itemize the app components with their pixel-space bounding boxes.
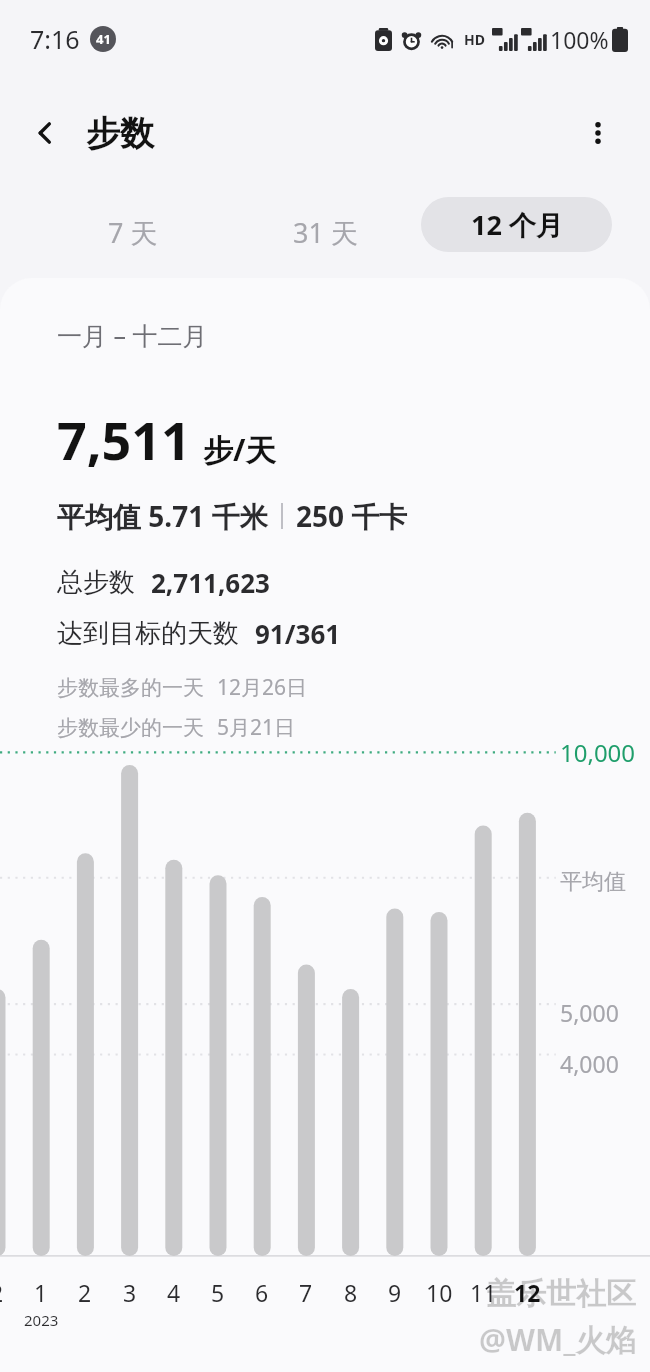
button[interactable]: 31 天: [250, 204, 400, 260]
staticText: 步数最多的一天: [57, 675, 204, 701]
staticText: 91/361: [255, 616, 341, 651]
staticText: 8: [344, 1277, 358, 1308]
staticText: 3: [123, 1277, 137, 1308]
other: Back: [18, 106, 72, 160]
staticText: 31 天: [293, 214, 358, 251]
staticText: 1: [34, 1277, 48, 1308]
staticText: 平均值 5.71 千米: [57, 497, 268, 535]
staticText: @WM_火焰: [479, 1319, 636, 1360]
staticText: 步数最少的一天: [57, 715, 204, 741]
staticText: 11: [470, 1277, 497, 1308]
staticText: 12月26日: [217, 673, 308, 702]
staticText: 5月21日: [217, 713, 296, 742]
staticText: 6: [255, 1277, 269, 1308]
staticText: 2023: [24, 1310, 59, 1330]
staticText: 平均值: [560, 868, 626, 896]
staticText: HD: [464, 30, 485, 49]
staticText: 步数: [86, 112, 154, 155]
staticText: 12 个月: [471, 206, 563, 243]
staticText: 4: [167, 1277, 181, 1308]
staticText: 10,000: [560, 736, 636, 769]
staticText: 7:16: [30, 22, 80, 56]
staticText: 41: [96, 30, 111, 48]
staticText: 盖乐世社区: [486, 1275, 636, 1313]
staticText: 一月 – 十二月: [57, 318, 208, 352]
button[interactable]: More options: [570, 105, 626, 161]
staticText: 7: [299, 1277, 313, 1308]
button[interactable]: 7 天: [60, 204, 205, 260]
staticText: 4,000: [560, 1048, 619, 1079]
staticText: 250 千卡: [296, 497, 408, 535]
staticText: 2: [78, 1277, 92, 1308]
staticText: 总步数: [57, 566, 135, 599]
staticText: 2: [0, 1277, 4, 1308]
button[interactable]: 12 个月: [421, 197, 612, 252]
staticText: 12: [514, 1277, 541, 1308]
staticText: 7 天: [108, 214, 158, 251]
staticText: 7,511: [57, 404, 191, 475]
staticText: 2,711,623: [151, 565, 270, 600]
staticText: 5: [211, 1277, 225, 1308]
staticText: 达到目标的天数: [57, 617, 239, 650]
staticText: 步/天: [203, 429, 276, 470]
staticText: 100%: [550, 24, 609, 55]
staticText: 9: [388, 1277, 402, 1308]
staticText: 10: [426, 1277, 453, 1308]
staticText: 5,000: [560, 997, 619, 1028]
button[interactable]: Back: [18, 106, 154, 160]
